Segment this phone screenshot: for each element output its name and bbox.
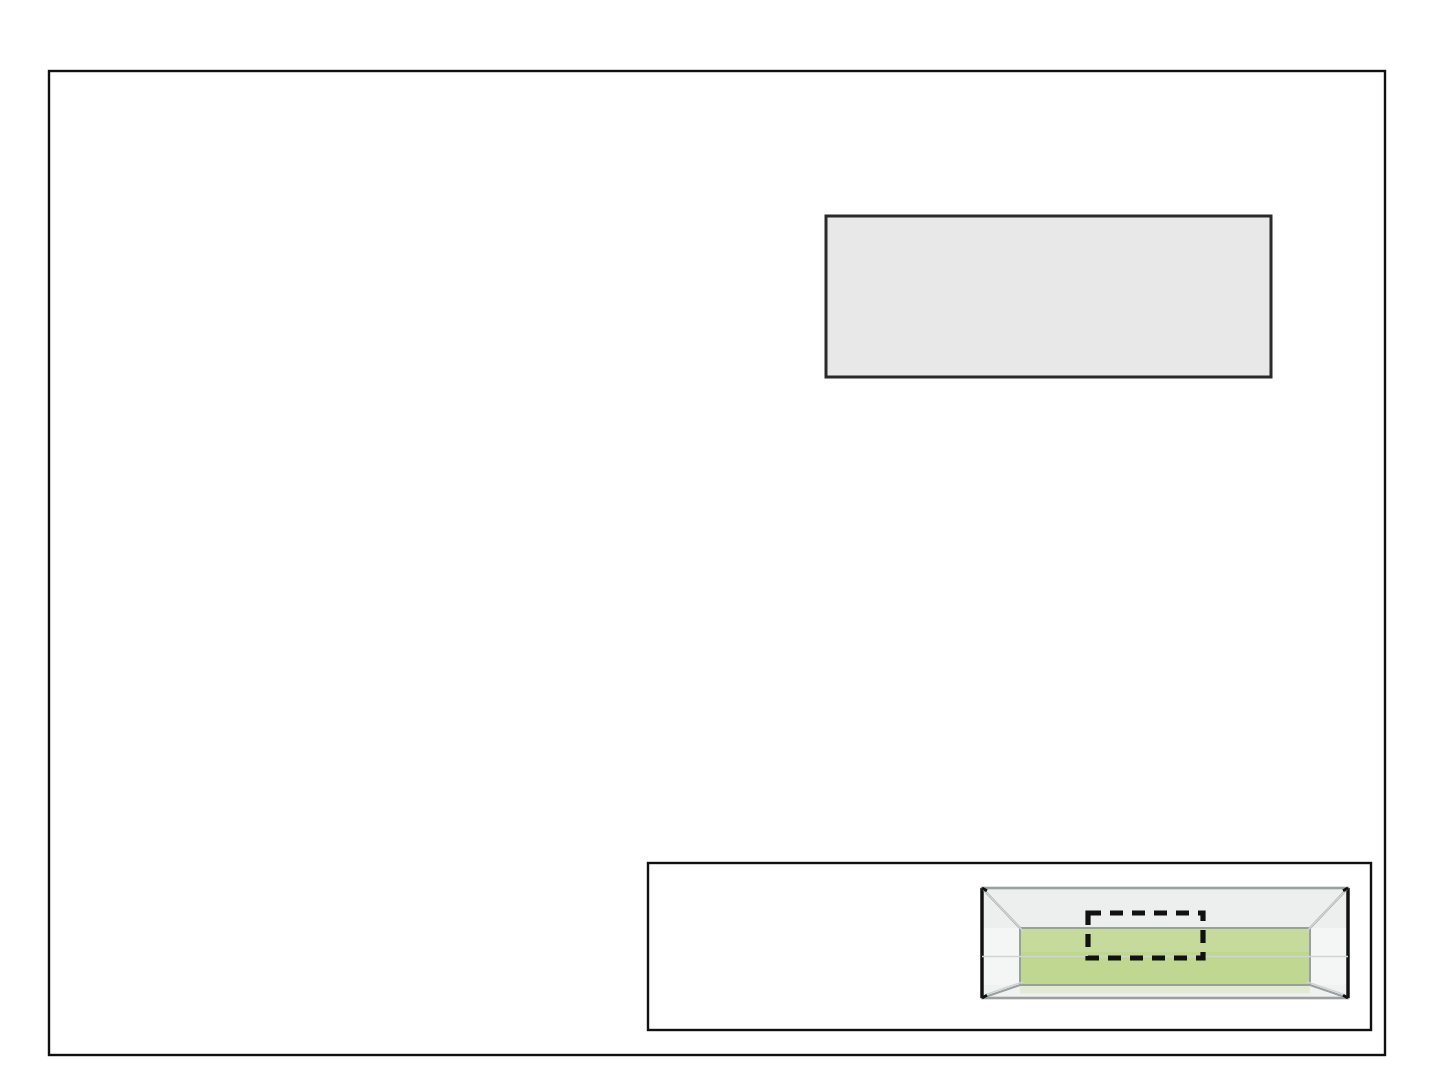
button[interactable]: Empty preview panel [0, 0, 1440, 1080]
